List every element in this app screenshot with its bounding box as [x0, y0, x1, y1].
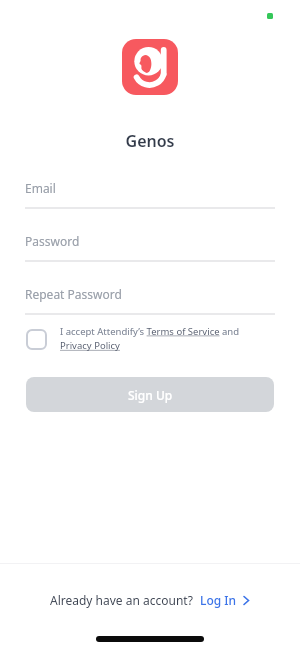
- button[interactable]: Log In: [193, 592, 250, 608]
- staticText: Sign Up: [128, 387, 173, 403]
- staticText: Already have an account?: [50, 592, 193, 608]
- staticText: Log In: [200, 592, 237, 608]
- button[interactable]: [26, 329, 47, 350]
- button[interactable]: I accept Attendify’s Terms of Service an…: [60, 325, 255, 352]
- button[interactable]: Password: [25, 233, 275, 262]
- staticText: Genos: [0, 130, 300, 152]
- button[interactable]: Email: [25, 180, 275, 209]
- staticText: Email: [25, 180, 56, 196]
- button[interactable]: Repeat Password: [25, 286, 275, 315]
- button[interactable]: [122, 39, 178, 95]
- staticText: Password: [25, 233, 80, 249]
- button[interactable]: Sign Up: [26, 377, 274, 412]
- staticText: Repeat Password: [25, 286, 122, 302]
